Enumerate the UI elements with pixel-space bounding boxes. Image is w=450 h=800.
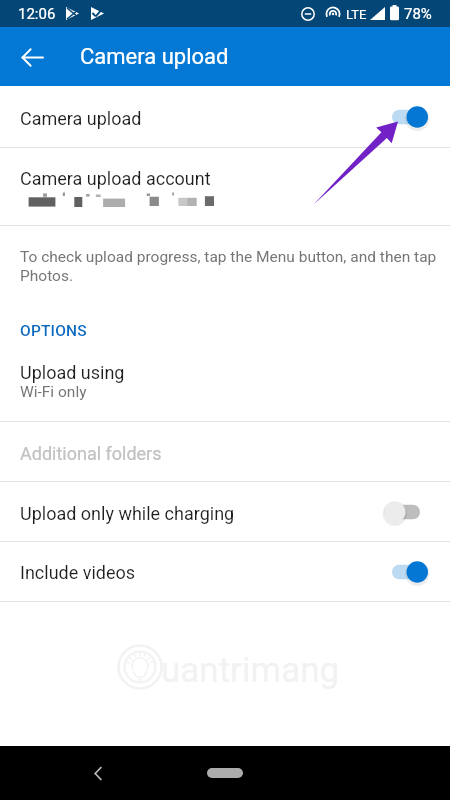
staticText: Include videos <box>20 562 392 583</box>
staticText: LTE <box>346 7 367 22</box>
staticText: Wi-Fi only <box>20 383 87 401</box>
staticText: Camera upload <box>20 108 392 129</box>
button[interactable]: Additional folders <box>0 422 450 481</box>
button[interactable]: Home <box>207 768 243 778</box>
staticText: Upload using <box>20 362 125 383</box>
button[interactable]: Upload only while charging <box>0 482 450 541</box>
staticText: Camera upload account <box>20 168 211 189</box>
button[interactable]: Back <box>76 751 120 795</box>
staticText: OPTIONS <box>20 322 87 340</box>
button[interactable]: Camera upload account <box>0 148 450 225</box>
staticText: uantrimang <box>161 650 340 691</box>
staticText: Upload only while charging <box>20 503 392 524</box>
staticText: Camera upload <box>80 44 229 70</box>
staticText: 78% <box>404 5 432 23</box>
staticText: To check upload progress, tap the Menu b… <box>20 248 440 284</box>
button[interactable]: Upload using <box>0 350 450 421</box>
staticText: Additional folders <box>20 443 162 464</box>
button[interactable]: Back <box>8 33 56 81</box>
staticText: 12:06 <box>18 5 56 23</box>
button[interactable]: Include videos <box>0 542 450 601</box>
button[interactable]: Camera upload <box>0 86 450 147</box>
